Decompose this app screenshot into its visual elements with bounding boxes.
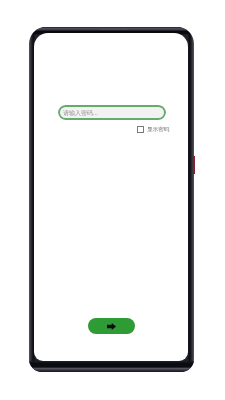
staticText: 显示密码 — [147, 126, 170, 133]
staticText: 请输入密码… — [63, 109, 98, 117]
button[interactable]: 显示密码 — [137, 126, 170, 133]
button[interactable]: Submit — [88, 318, 135, 334]
button[interactable]: 请输入密码… — [58, 105, 166, 120]
